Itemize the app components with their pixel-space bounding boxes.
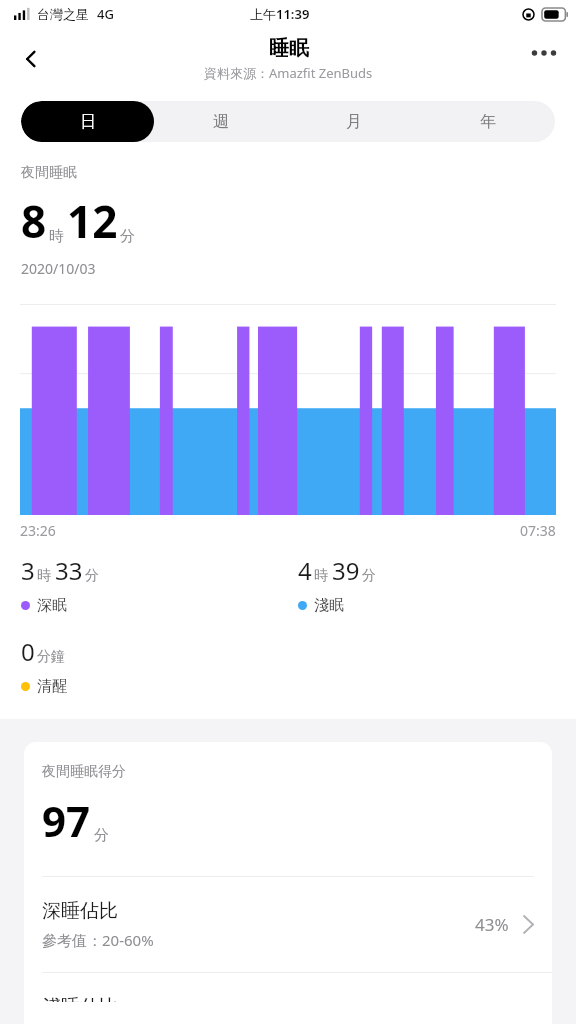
staticText: 上午11:39	[250, 5, 310, 23]
staticText: 時	[49, 227, 64, 246]
staticText: 4G	[97, 5, 114, 23]
staticText: 淺睡佔比	[42, 995, 118, 1002]
staticText: 時	[37, 567, 51, 585]
staticText: 週	[213, 112, 229, 132]
staticText: 分	[362, 567, 376, 585]
staticText: 23:26	[20, 521, 56, 540]
staticText: 8	[21, 191, 47, 251]
staticText: 39	[332, 554, 360, 587]
staticText: 時	[314, 567, 328, 585]
staticText: 夜間睡眠	[21, 164, 77, 182]
button[interactable]: 週	[154, 101, 287, 142]
staticText: 台灣之星	[37, 6, 89, 22]
staticText: 4	[298, 554, 312, 587]
staticText: 97	[42, 792, 91, 849]
button[interactable]: 日	[21, 101, 154, 142]
button[interactable]: Back	[8, 35, 56, 83]
staticText: 淺眠	[314, 596, 344, 615]
button[interactable]: 年	[421, 101, 555, 142]
staticText: 3	[21, 554, 35, 587]
staticText: 睡眠	[269, 36, 309, 61]
staticText: 2020/10/03	[21, 259, 96, 278]
staticText: 33	[55, 554, 83, 587]
staticText: 月	[346, 112, 362, 132]
staticText: 12	[67, 191, 118, 251]
staticText: 分	[94, 826, 109, 845]
staticText: 參考值：20-60%	[42, 930, 154, 950]
staticText: 深眠	[37, 596, 67, 615]
button[interactable]: More options	[520, 29, 568, 77]
button[interactable]: 深睡佔比	[24, 877, 552, 972]
staticText: 日	[80, 112, 96, 132]
button[interactable]: 月	[287, 101, 421, 142]
staticText: 分鐘	[37, 648, 65, 666]
button[interactable]: 淺睡佔比	[24, 973, 552, 1024]
staticText: 07:38	[520, 521, 556, 540]
staticText: 資料來源：Amazfit ZenBuds	[204, 64, 373, 82]
staticText: 43%	[475, 913, 509, 936]
staticText: 分	[120, 227, 135, 246]
staticText: 清醒	[37, 677, 67, 696]
staticText: 分	[85, 567, 99, 585]
staticText: 年	[480, 112, 496, 132]
staticText: 深睡佔比	[42, 899, 118, 923]
staticText: 夜間睡眠得分	[42, 763, 126, 781]
staticText: 0	[21, 635, 35, 668]
